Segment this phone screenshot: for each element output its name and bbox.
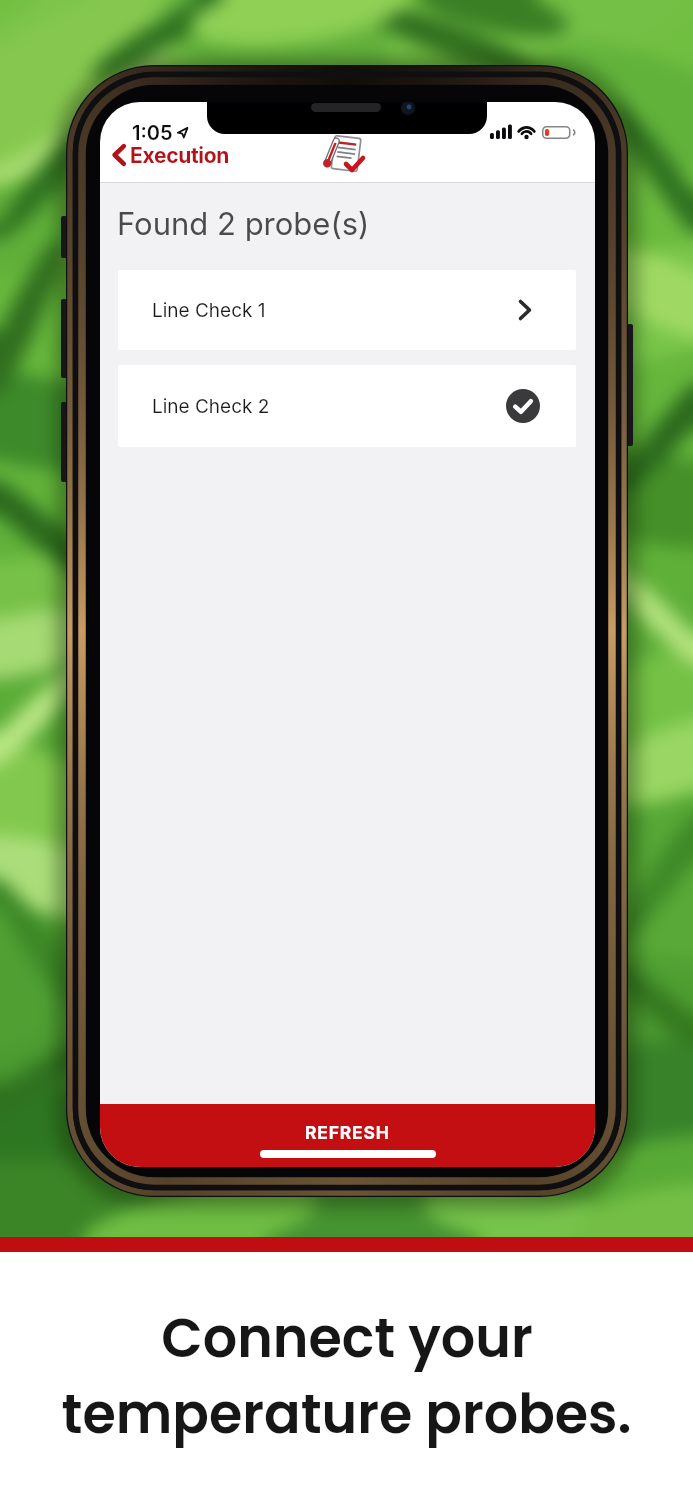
staticText: 1:05 xyxy=(132,121,173,145)
staticText: REFRESH xyxy=(305,1122,390,1143)
staticText: temperature probes. xyxy=(61,1376,632,1452)
staticText: Connect your xyxy=(161,1300,533,1376)
staticText: Execution xyxy=(130,143,230,168)
staticText: Found 2 probe(s) xyxy=(117,205,370,243)
staticText: Line Check 1 xyxy=(152,299,266,322)
staticText: Line Check 2 xyxy=(152,395,270,418)
